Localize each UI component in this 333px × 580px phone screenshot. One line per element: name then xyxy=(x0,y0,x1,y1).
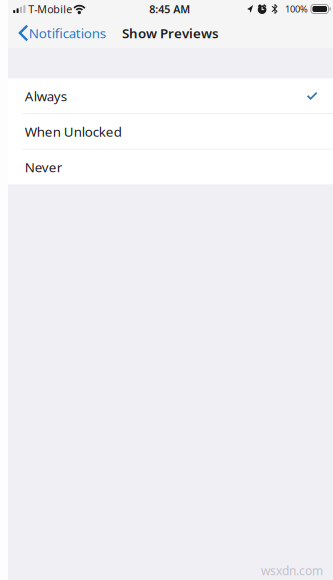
staticText: Notifications xyxy=(29,24,106,42)
button[interactable]: Always xyxy=(8,79,333,113)
staticText: 8:45 AM xyxy=(149,2,190,16)
staticText: T-Mobile xyxy=(28,2,72,16)
staticText: Never xyxy=(25,158,63,176)
staticText: Show Previews xyxy=(122,24,219,42)
staticText: 100% xyxy=(285,3,308,15)
staticText: wsxdn.com xyxy=(261,563,323,578)
button[interactable]: Notifications xyxy=(8,20,106,46)
staticText: When Unlocked xyxy=(25,123,122,140)
button[interactable]: Never xyxy=(8,150,333,184)
button[interactable]: When Unlocked xyxy=(8,114,333,149)
staticText: Always xyxy=(25,87,67,105)
